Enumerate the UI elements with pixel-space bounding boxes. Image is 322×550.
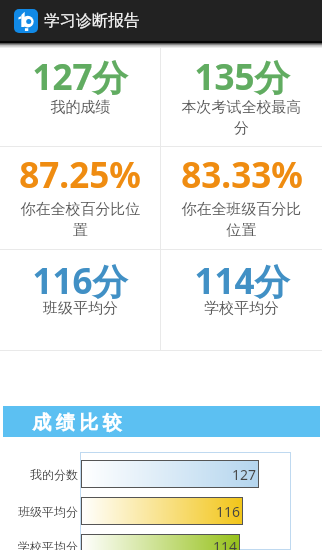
button[interactable]: 83.33%: [161, 147, 322, 249]
staticText: 116: [216, 502, 241, 521]
staticText: 135分: [194, 53, 290, 101]
staticText: 我的成绩: [19, 98, 142, 117]
button[interactable]: 班级平均分: [3, 497, 320, 525]
staticText: 我的分数: [30, 467, 78, 482]
staticText: 83.33%: [181, 151, 303, 199]
staticText: 学校平均分: [180, 299, 303, 318]
staticText: 114分: [194, 257, 290, 305]
staticText: 127分: [32, 53, 128, 101]
staticText: 127: [232, 465, 257, 484]
staticText: 你在全班级百分比位置: [180, 200, 303, 239]
staticText: 班级平均分: [19, 299, 142, 318]
staticText: 你在全校百分比位置: [19, 200, 142, 239]
button[interactable]: 成绩比较: [3, 406, 320, 437]
staticText: 班级平均分: [18, 504, 78, 519]
button[interactable]: 135分: [161, 41, 322, 146]
staticText: 成绩比较: [30, 411, 124, 435]
button[interactable]: 127分: [0, 41, 160, 146]
button[interactable]: 学校平均分: [3, 534, 320, 550]
button[interactable]: 87.25%: [0, 147, 160, 249]
staticText: 学校平均分: [18, 539, 78, 550]
button[interactable]: 114分: [161, 250, 322, 350]
staticText: 本次考试全校最高分: [180, 98, 303, 137]
staticText: 114: [213, 537, 238, 550]
button[interactable]: App icon: [14, 9, 38, 33]
staticText: 87.25%: [19, 151, 141, 199]
button[interactable]: 我的分数: [3, 460, 320, 488]
button[interactable]: 116分: [0, 250, 160, 350]
staticText: 学习诊断报告: [44, 11, 140, 31]
staticText: 116分: [32, 257, 128, 305]
